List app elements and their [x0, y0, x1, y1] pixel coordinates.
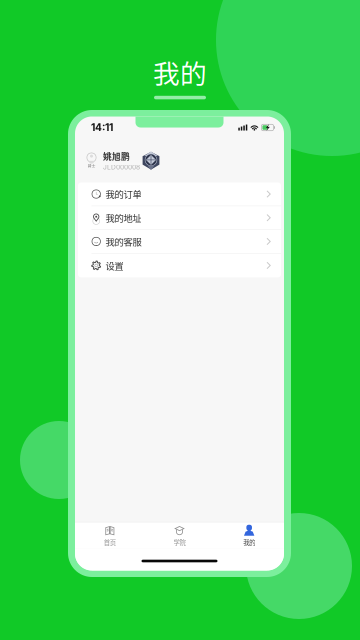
staticText: 我的 — [153, 53, 207, 91]
button[interactable]: 我的订单 — [78, 182, 281, 206]
staticText: 我的 — [243, 537, 255, 547]
button[interactable]: 我的 — [214, 522, 284, 548]
button[interactable]: 我的地址 — [78, 206, 281, 230]
staticText: 我的地址 — [105, 211, 141, 224]
staticText: 14:11 — [91, 121, 113, 134]
staticText: 我的客服 — [105, 235, 141, 248]
button[interactable]: 设置 — [78, 254, 281, 277]
staticText: JLD000008 — [103, 163, 140, 171]
staticText: 姚旭鹏 — [103, 150, 130, 162]
staticText: 设置 — [105, 259, 123, 272]
button[interactable]: 学院 — [145, 522, 214, 548]
button[interactable]: 首页 — [75, 522, 145, 548]
button[interactable]: 我的客服 — [78, 230, 281, 254]
staticText: 我的订单 — [105, 187, 141, 201]
staticText: 学院 — [173, 537, 185, 547]
button[interactable]: 骑士 — [75, 138, 284, 182]
staticText: 骑士 — [87, 163, 95, 168]
staticText: 首页 — [104, 537, 116, 547]
